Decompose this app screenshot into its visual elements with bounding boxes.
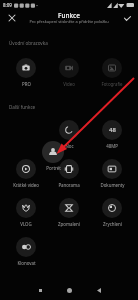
staticText: Zpomalení [58, 221, 80, 227]
staticText: Krátké video [13, 182, 39, 188]
button[interactable]: Krátké video [5, 159, 47, 188]
staticText: VLOG [20, 221, 32, 227]
button[interactable]: Fotografie [91, 58, 133, 87]
staticText: Panorama [58, 182, 80, 188]
staticText: Úvodní obrazovka [9, 40, 48, 46]
staticText: Dokumenty [100, 182, 125, 188]
button[interactable]: Home [61, 282, 77, 298]
staticText: Další funkce [9, 104, 36, 110]
staticText: Zrychlení [103, 221, 122, 227]
staticText: Funkce [58, 11, 80, 20]
staticText: 8:09 [3, 2, 12, 8]
staticText: 48 [109, 126, 116, 134]
staticText: Pro přeskupení stiskněte a přidržte polo… [29, 19, 109, 24]
button[interactable]: Confirm [119, 10, 135, 26]
button[interactable]: Recents [32, 282, 48, 298]
button[interactable]: Back [91, 282, 107, 298]
button[interactable]: Noc [48, 120, 90, 149]
button[interactable]: Zrychlení [91, 198, 133, 227]
staticText: Noc [65, 143, 74, 149]
staticText: Fotografie [101, 81, 123, 87]
button[interactable]: Dokumenty [91, 159, 133, 188]
button[interactable]: Klonovat [5, 237, 47, 266]
button[interactable]: Close [4, 10, 20, 26]
button[interactable]: Portrét [32, 141, 74, 171]
staticText: Portrét [46, 165, 61, 171]
button[interactable]: PRO [5, 58, 47, 87]
button[interactable]: Panorama [48, 159, 90, 188]
staticText: Video [63, 81, 75, 87]
staticText: PRO [22, 81, 31, 87]
button[interactable]: Video [48, 58, 90, 87]
staticText: 48MP [106, 143, 118, 149]
button[interactable]: VLOG [5, 198, 47, 227]
staticText: Klonovat [17, 260, 36, 266]
button[interactable]: 48MP [91, 120, 133, 149]
button[interactable]: Zpomalení [48, 198, 90, 227]
